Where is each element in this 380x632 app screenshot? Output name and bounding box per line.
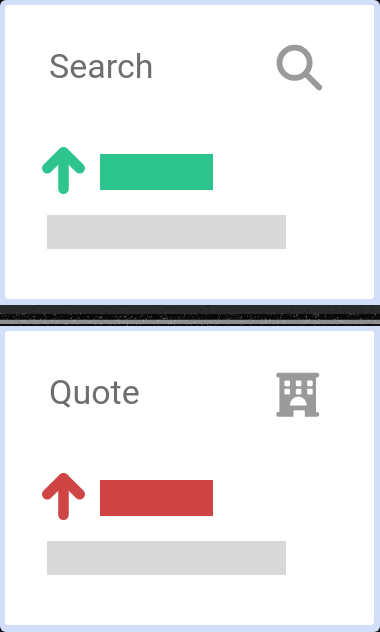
staticText: Search xyxy=(49,46,154,86)
button[interactable]: Search xyxy=(5,5,374,299)
button[interactable]: Quote xyxy=(5,331,374,625)
button[interactable]: Search xyxy=(276,45,325,94)
staticText: Quote xyxy=(49,372,140,412)
button[interactable]: Business xyxy=(276,372,325,421)
